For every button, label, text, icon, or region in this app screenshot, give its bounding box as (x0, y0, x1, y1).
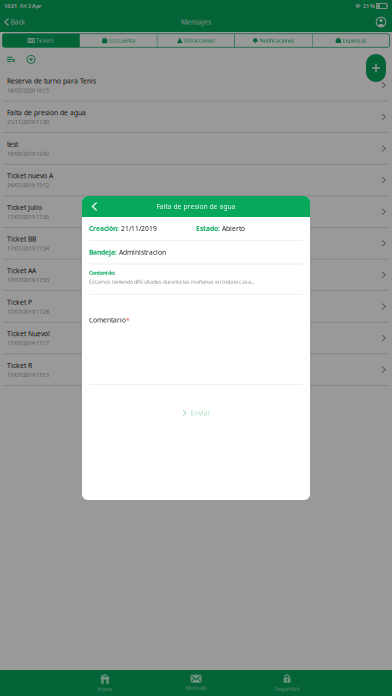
button[interactable]: Notificaciones (235, 34, 312, 47)
staticText: Administracion (119, 248, 166, 257)
staticText: Ticket R (7, 361, 32, 370)
staticText: Abierto (222, 224, 245, 233)
button[interactable]: Mensaje (150, 670, 241, 696)
button[interactable]: Ticket Nuevo! (0, 323, 392, 354)
staticText: Ticket AA (7, 266, 36, 275)
staticText: 21 % (362, 2, 376, 10)
button[interactable]: Enviar (82, 385, 310, 441)
staticText: Notificaciones (260, 37, 295, 44)
staticText: Reserva de turno para Tenis (7, 76, 96, 85)
staticText: 17/07/2019 17:28 (7, 308, 49, 315)
staticText: Mensajes (181, 18, 211, 26)
button[interactable]: New ticket (366, 54, 386, 82)
button[interactable]: Infracciones (158, 34, 234, 47)
staticText: Ticket nuevo A (7, 171, 53, 180)
button[interactable]: Home (59, 670, 150, 696)
staticText: 18/09/2019 12:42 (7, 150, 49, 157)
staticText: Ticket BB (7, 234, 36, 243)
staticText: Expensas (343, 37, 367, 44)
staticText: Back (10, 18, 25, 26)
button[interactable]: Ticket Julio (0, 196, 392, 228)
staticText: 18/03/2020 16:15 (7, 87, 49, 94)
staticText: Seguridad (275, 685, 299, 692)
button[interactable]: Clear filters (5, 53, 17, 65)
staticText: 17/07/2019 17:13 (7, 371, 49, 378)
staticText: Ticket P (7, 298, 32, 307)
staticText: Falta de presion de agua (156, 202, 235, 211)
button[interactable]: Ticket nuevo A (0, 165, 392, 196)
staticText: 17/07/2019 17:33 (7, 276, 49, 284)
staticText: 17/07/2019 17:17 (7, 340, 49, 347)
staticText: * (126, 316, 130, 324)
staticText: Bandeja: (89, 248, 117, 257)
staticText: Enviar (191, 408, 211, 417)
button[interactable]: Ticket R (0, 354, 392, 386)
button[interactable]: Est.Cuenta (80, 34, 157, 47)
button[interactable]: Ticket AA (0, 259, 392, 291)
button[interactable]: Back (0, 12, 28, 32)
button[interactable]: Tickets (2, 34, 79, 47)
staticText: Falta de presion de agua (7, 108, 86, 117)
button[interactable]: Reserva de turno para Tenis (0, 70, 392, 101)
staticText: 21/11/2019 11:30 (7, 118, 49, 126)
button[interactable]: Add (25, 53, 37, 65)
staticText: Estado: (196, 224, 220, 233)
button[interactable]: Profile (370, 12, 392, 32)
staticText: Mensaje (185, 684, 206, 691)
staticText: Home (97, 686, 112, 693)
staticText: Comentario (89, 316, 126, 324)
staticText: Estamos teniendo dificultades durante la… (89, 278, 254, 285)
staticText: 21/11/2019 (121, 224, 157, 233)
button[interactable]: Falta de presion de agua (0, 101, 392, 133)
button[interactable]: Seguridad (241, 670, 332, 696)
button[interactable]: Ticket P (0, 291, 392, 323)
staticText: 16:31 Fri 3 Apr (4, 2, 41, 10)
staticText: 17/07/2019 17:34 (7, 245, 49, 252)
staticText: Ticket Julio (7, 203, 42, 212)
staticText: Tickets (36, 37, 54, 44)
staticText: Contenido: (89, 269, 115, 276)
button[interactable]: test (0, 133, 392, 165)
staticText: Est.Cuenta (109, 37, 135, 44)
staticText: Ticket Nuevo! (7, 329, 50, 338)
staticText: 24/07/2019 15:12 (7, 182, 49, 189)
button[interactable]: Ticket BB (0, 228, 392, 259)
staticText: Infracciones (184, 37, 215, 44)
staticText: test (7, 140, 18, 149)
staticText: Creación: (89, 224, 119, 233)
button[interactable]: Back (82, 196, 106, 217)
button[interactable]: Expensas (313, 34, 389, 47)
staticText: 17/07/2019 17:35 (7, 213, 49, 220)
